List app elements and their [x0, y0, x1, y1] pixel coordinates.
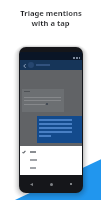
button[interactable] [30, 164, 82, 172]
staticText: Triage mentions [20, 8, 82, 18]
button[interactable]: Home [48, 181, 54, 187]
button[interactable]: Back [22, 63, 27, 68]
button[interactable]: Back [28, 181, 34, 187]
button[interactable] [22, 148, 82, 156]
button[interactable]: Recents [68, 181, 74, 187]
staticText: with a tap [31, 18, 70, 28]
button[interactable] [30, 156, 82, 164]
